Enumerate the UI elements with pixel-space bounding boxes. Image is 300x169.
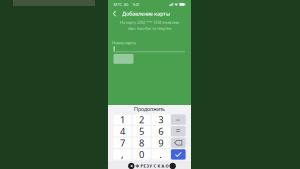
staticText: Добавление карты — [122, 10, 170, 17]
button[interactable]: 4 — [113, 126, 131, 136]
staticText: ваш кэшбэк за покупки — [128, 26, 171, 31]
staticText: 1 — [120, 113, 125, 126]
button[interactable]: Done — [171, 149, 186, 160]
staticText: 3 — [158, 113, 163, 126]
staticText: 5 — [139, 125, 144, 137]
staticText: 2 — [139, 113, 144, 126]
staticText: Ф Р Е З У С К А О — [135, 163, 168, 169]
button[interactable]: Продолжить — [108, 105, 191, 113]
button[interactable]: − — [171, 114, 186, 125]
button[interactable]: . — [152, 149, 170, 160]
button[interactable]: Paste card number — [113, 54, 133, 64]
staticText: 9 — [158, 137, 163, 149]
staticText: , — [121, 148, 124, 161]
staticText: МТС 4G 9:41 — [113, 2, 139, 7]
button[interactable]: 1 — [113, 114, 131, 125]
staticText: Продолжить — [134, 105, 165, 113]
button[interactable]: 9 — [152, 138, 170, 148]
button[interactable]: 0 — [133, 149, 151, 160]
button[interactable]: 8 — [133, 138, 151, 148]
staticText: = — [176, 126, 181, 136]
button[interactable]: , — [113, 149, 131, 160]
button[interactable]: 5 — [133, 126, 151, 136]
staticText: − — [176, 114, 181, 125]
button[interactable]: 2 — [133, 114, 151, 125]
button[interactable]: Back — [110, 10, 118, 18]
button[interactable]: 3 — [152, 114, 170, 125]
staticText: 0 — [139, 148, 144, 161]
staticText: 6 — [158, 125, 163, 137]
button[interactable]: = — [171, 126, 186, 136]
staticText: 8 — [139, 137, 144, 149]
staticText: Номер карты — [112, 40, 136, 45]
button[interactable]: 7 — [113, 138, 131, 148]
staticText: 4 — [120, 125, 125, 137]
button[interactable]: Next language — [169, 163, 176, 169]
staticText: На карту 2202 *** 1234 зачислим — [120, 19, 179, 25]
staticText: 7 — [120, 137, 125, 149]
staticText: . — [159, 148, 162, 161]
button[interactable]: Previous language — [128, 163, 134, 169]
button[interactable]: 6 — [152, 126, 170, 136]
button[interactable]: Backspace — [171, 138, 186, 148]
